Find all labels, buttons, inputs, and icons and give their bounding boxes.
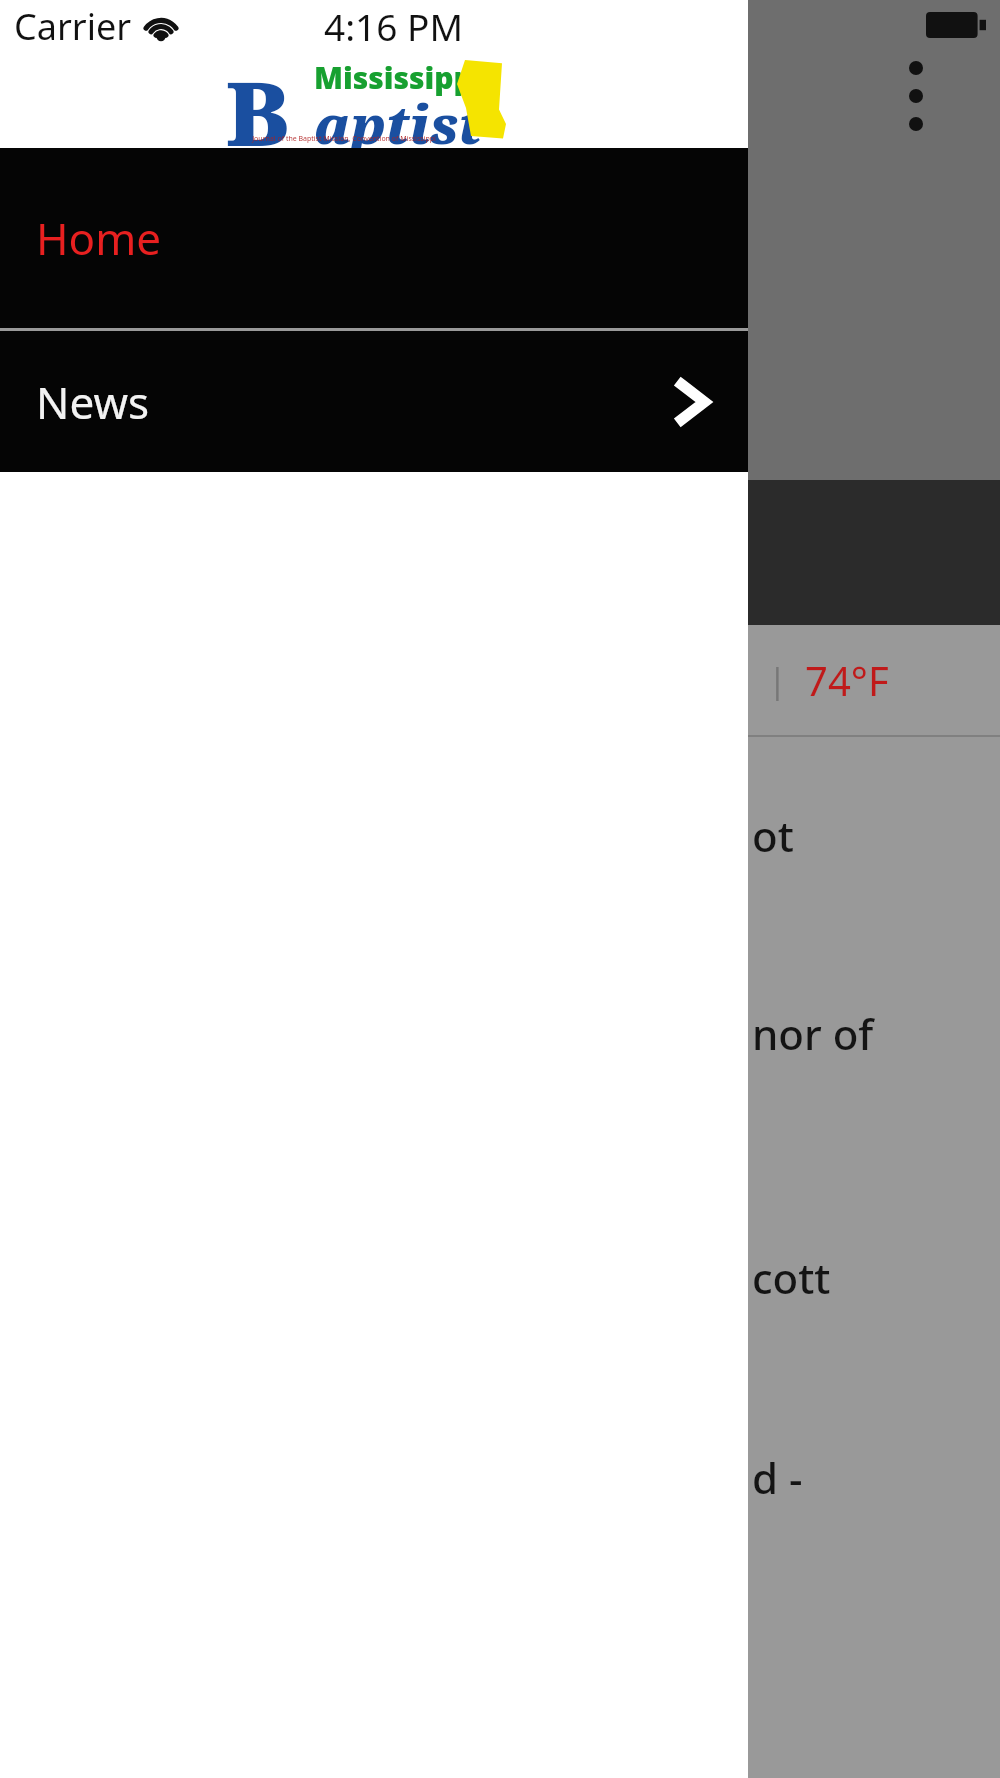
staticText: d -	[752, 1449, 803, 1506]
staticText: Carrier	[14, 2, 132, 51]
staticText: B	[226, 52, 290, 148]
staticText: News	[36, 372, 150, 432]
staticText: pi	[720, 657, 750, 703]
staticText: |	[768, 657, 787, 703]
staticText: Mississippi	[314, 57, 483, 98]
staticText: 4:16 PM	[324, 1, 463, 51]
staticText: 74°F	[805, 653, 889, 707]
staticText: aptist	[314, 88, 483, 148]
button[interactable]: Home	[0, 148, 748, 328]
button[interactable]: More options	[884, 48, 948, 144]
staticText: Home	[36, 208, 162, 268]
staticText: Journal of the Baptist Mission, Conventi…	[252, 134, 436, 144]
staticText: nor of	[752, 1005, 874, 1062]
button[interactable]: News	[0, 331, 748, 472]
staticText: ot	[752, 807, 794, 864]
staticText: cott	[752, 1249, 831, 1306]
